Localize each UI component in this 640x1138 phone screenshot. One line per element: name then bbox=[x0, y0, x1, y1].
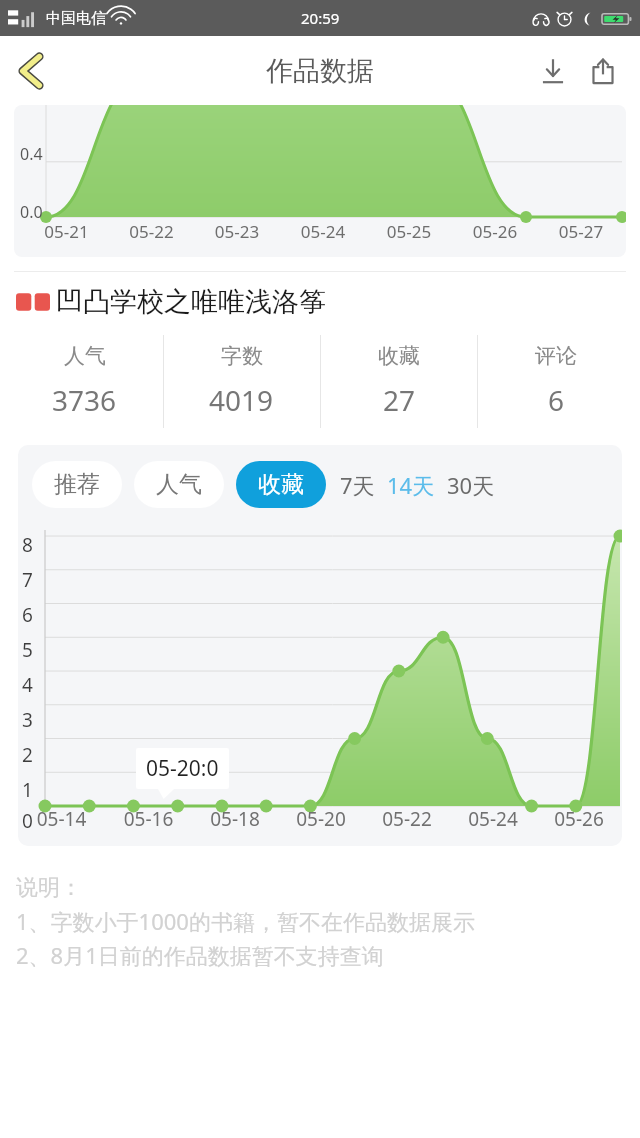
button[interactable]: 7天 bbox=[340, 470, 375, 500]
staticText: 05-24 bbox=[280, 220, 366, 243]
button[interactable]: 人气 bbox=[134, 461, 224, 508]
button[interactable]: 推荐 bbox=[32, 461, 122, 508]
staticText: 作品数据 bbox=[266, 54, 374, 88]
staticText: 05-24 bbox=[450, 806, 536, 832]
staticText: 3 bbox=[22, 707, 33, 733]
staticText: 0 bbox=[22, 808, 33, 834]
staticText: 27 bbox=[383, 381, 416, 419]
staticText: 6 bbox=[22, 602, 33, 628]
staticText: 说明： bbox=[16, 874, 82, 902]
staticText: 6 bbox=[548, 381, 565, 419]
staticText: 2、8月1日前的作品数据暂不支持查询 bbox=[16, 940, 384, 970]
staticText: 1 bbox=[22, 777, 33, 803]
staticText: 05-18 bbox=[192, 806, 278, 832]
staticText: 1、字数小于1000的书籍，暂不在作品数据展示 bbox=[16, 906, 475, 936]
button[interactable]: 14天 bbox=[387, 470, 435, 500]
staticText: 05-14 bbox=[18, 806, 105, 832]
staticText: 凹凸学校之唯唯浅洛筝 bbox=[56, 285, 326, 319]
staticText: 5 bbox=[22, 637, 33, 663]
button[interactable]: 收藏 bbox=[236, 461, 326, 508]
staticText: 7 bbox=[22, 567, 33, 593]
staticText: 人气 bbox=[64, 343, 106, 369]
staticText: 0.0 bbox=[20, 201, 43, 223]
staticText: 人气 bbox=[156, 470, 202, 499]
staticText: 2 bbox=[22, 742, 33, 768]
staticText: 0.4 bbox=[20, 143, 43, 165]
staticText: 收藏 bbox=[378, 343, 420, 369]
staticText: 4019 bbox=[209, 381, 274, 419]
staticText: 3736 bbox=[52, 381, 117, 419]
button[interactable]: Download bbox=[528, 46, 578, 96]
button[interactable]: Share bbox=[578, 46, 628, 96]
staticText: 05-21 bbox=[24, 220, 109, 243]
staticText: 05-26 bbox=[452, 220, 538, 243]
button[interactable]: Back bbox=[0, 40, 62, 102]
staticText: 05-23 bbox=[194, 220, 280, 243]
staticText: 05-22 bbox=[109, 220, 194, 243]
staticText: 字数 bbox=[221, 343, 263, 369]
staticText: 05-26 bbox=[536, 806, 622, 832]
staticText: 8 bbox=[22, 532, 33, 558]
staticText: 推荐 bbox=[54, 470, 100, 499]
staticText: 05-25 bbox=[366, 220, 452, 243]
staticText: 20:59 bbox=[301, 8, 340, 28]
staticText: 05-22 bbox=[364, 806, 450, 832]
staticText: 05-20 bbox=[278, 806, 364, 832]
staticText: 05-27 bbox=[538, 220, 624, 243]
staticText: 评论 bbox=[535, 343, 577, 369]
staticText: 中国电信 bbox=[46, 9, 106, 28]
staticText: 05-20:0 bbox=[146, 754, 219, 783]
button[interactable]: 30天 bbox=[447, 470, 495, 500]
staticText: 收藏 bbox=[258, 470, 304, 499]
staticText: 4 bbox=[22, 672, 33, 698]
staticText: 05-16 bbox=[105, 806, 192, 832]
